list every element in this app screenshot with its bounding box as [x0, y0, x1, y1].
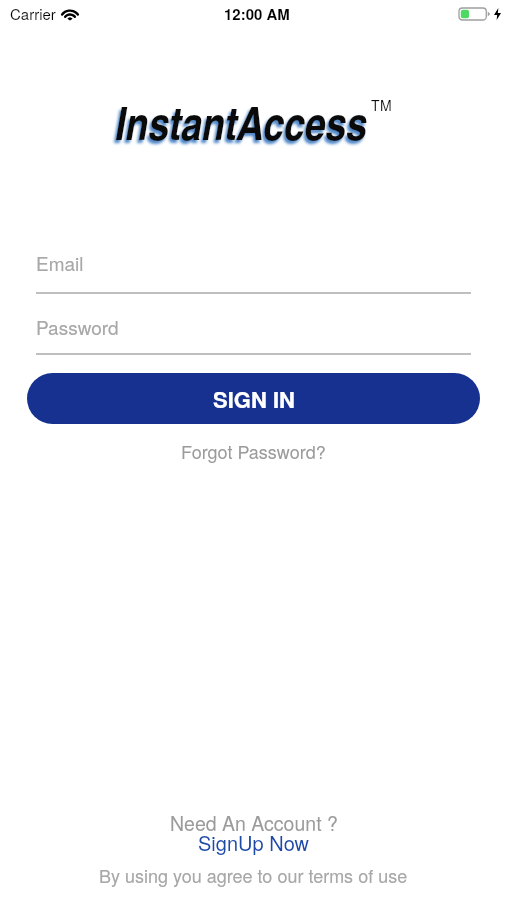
button[interactable]: SignUp Now: [198, 828, 310, 857]
staticText: 12:00 AM: [224, 3, 290, 24]
staticText: By using you agree to our terms of use: [99, 862, 408, 888]
button[interactable]: Email: [36, 249, 471, 276]
button[interactable]: Password: [36, 313, 471, 340]
staticText: Need An Account ?: [170, 809, 338, 837]
staticText: Carrier: [10, 3, 56, 24]
staticText: TM: [371, 95, 393, 115]
staticText: InstantAccess: [115, 90, 367, 154]
button[interactable]: SIGN IN: [27, 373, 480, 424]
staticText: SIGN IN: [213, 383, 295, 415]
button[interactable]: Forgot Password?: [181, 438, 326, 464]
